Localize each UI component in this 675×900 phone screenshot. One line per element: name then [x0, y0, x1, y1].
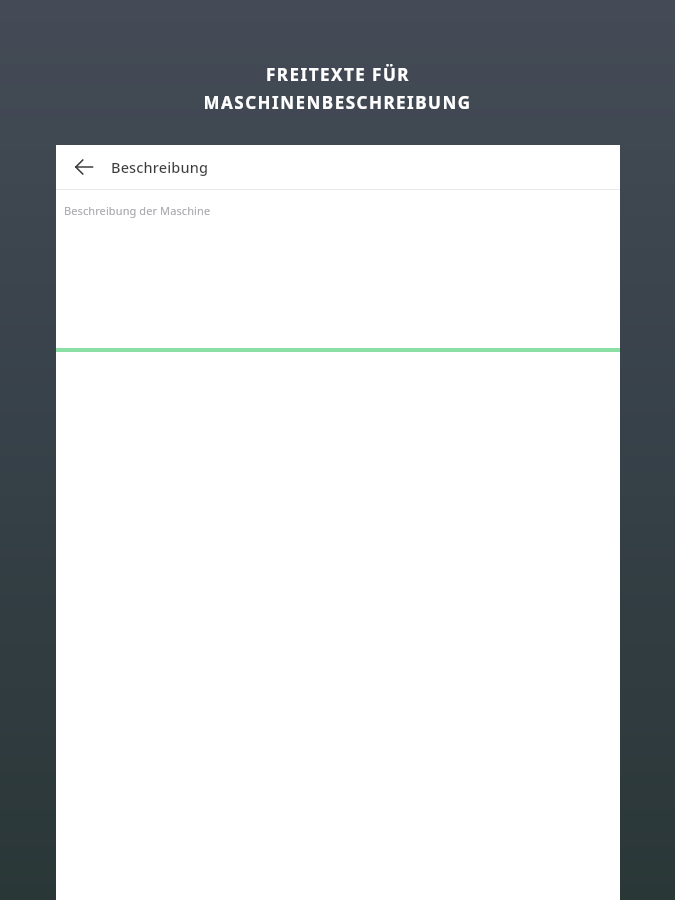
button[interactable]: Beschreibung der Maschine	[56, 190, 620, 348]
staticText: MASCHINENBESCHREIBUNG	[203, 91, 472, 114]
staticText: Beschreibung	[111, 157, 209, 177]
staticText: FREITEXTE FÜR	[266, 63, 410, 86]
staticText: Beschreibung der Maschine	[64, 203, 211, 218]
button[interactable]: Back	[62, 145, 106, 189]
